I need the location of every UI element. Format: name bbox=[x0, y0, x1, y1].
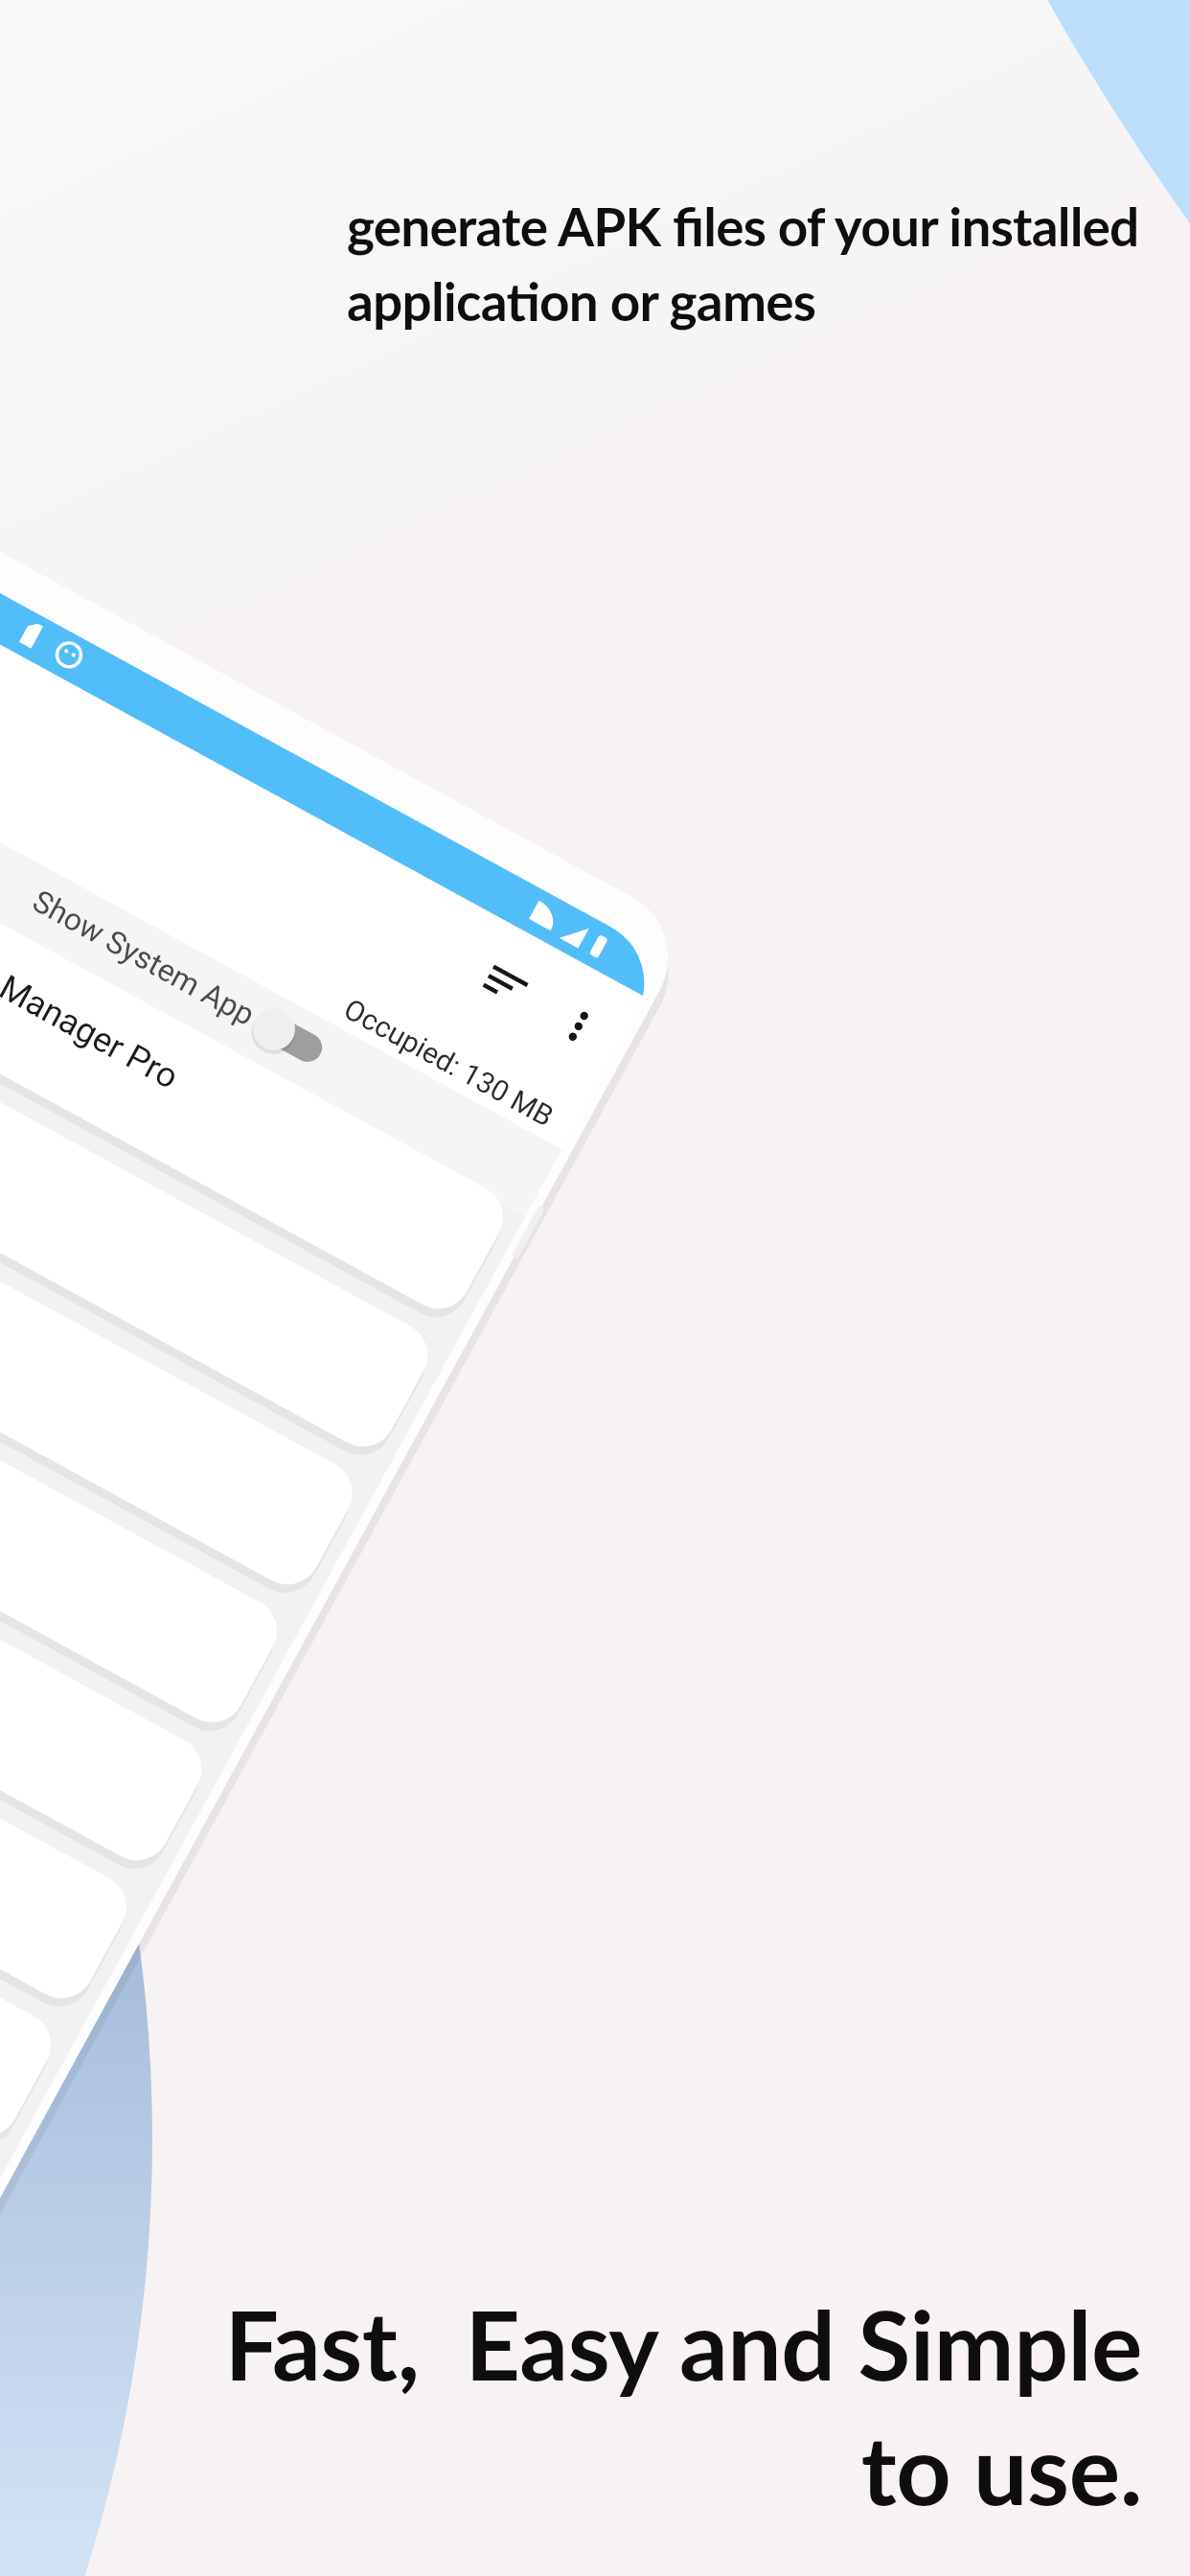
staticText: APK Manager Pro bbox=[0, 931, 185, 1097]
staticText: generate APK files of your installed app… bbox=[347, 195, 1161, 333]
staticText: Fast, Easy and Simple to use. bbox=[192, 2286, 1142, 2525]
staticText: Occupied: 130 MB bbox=[338, 992, 560, 1133]
staticText: Show System App bbox=[27, 883, 261, 1033]
